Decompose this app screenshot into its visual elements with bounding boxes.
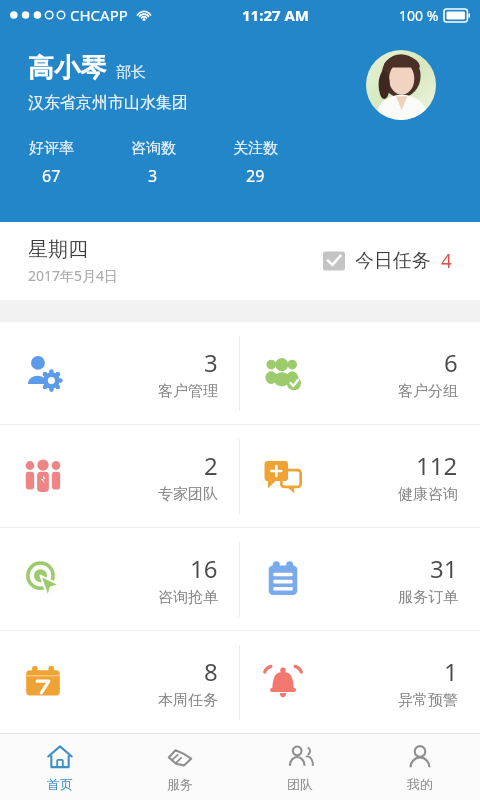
staticText: 8 [204,655,218,688]
staticText: 部长 [116,63,146,82]
button[interactable]: 咨询数 [130,139,176,187]
staticText: 1 [444,655,458,688]
button[interactable]: 16 [0,528,240,630]
button[interactable]: 首页 [0,734,120,800]
button[interactable]: 2 [0,425,240,527]
staticText: 16 [190,552,218,585]
staticText: 高小琴 [28,52,106,85]
staticText: 2 [204,449,218,482]
button[interactable]: 6 [240,322,480,424]
staticText: 团队 [287,776,313,792]
button[interactable]: 服务 [120,734,240,800]
staticText: 异常预警 [398,691,458,710]
staticText: 6 [444,346,458,379]
staticText: 2017年5月4日 [28,266,119,285]
staticText: 本周任务 [158,691,218,710]
staticText: 我的 [407,776,433,792]
staticText: 112 [416,449,458,482]
button[interactable]: 112 [240,425,480,527]
staticText: 星期四 [28,237,88,262]
button[interactable]: 用户头像 [366,50,436,120]
staticText: 健康咨询 [398,485,458,504]
staticText: 100 % [399,6,439,25]
button[interactable]: 关注数 [232,139,278,187]
staticText: 31 [430,552,458,585]
button[interactable]: 1 [240,631,480,733]
button[interactable]: 好评率 [28,139,74,187]
button[interactable]: 3 [0,322,240,424]
button[interactable]: 8 [0,631,240,733]
staticText: 关注数 [233,139,278,158]
button[interactable]: 团队 [240,734,360,800]
staticText: 服务 [167,776,193,792]
staticText: 3 [204,346,218,379]
staticText: 29 [246,165,265,187]
staticText: 专家团队 [158,485,218,504]
button[interactable]: 我的 [360,734,480,800]
staticText: 好评率 [29,139,74,158]
staticText: 11:27 AM [242,5,309,25]
staticText: 客户管理 [158,382,218,401]
staticText: 3 [148,165,158,187]
staticText: 客户分组 [398,382,458,401]
staticText: 咨询抢单 [158,588,218,607]
staticText: 汉东省京州市山水集团 [28,93,188,113]
button[interactable]: 31 [240,528,480,630]
staticText: 67 [42,165,61,187]
staticText: CHCAPP [70,5,128,25]
staticText: 咨询数 [131,139,176,158]
staticText: 首页 [47,776,73,792]
staticText: 服务订单 [398,588,458,607]
button[interactable]: 星期四 [0,222,480,300]
staticText: 今日任务 [355,249,431,273]
staticText: 4 [441,248,452,274]
